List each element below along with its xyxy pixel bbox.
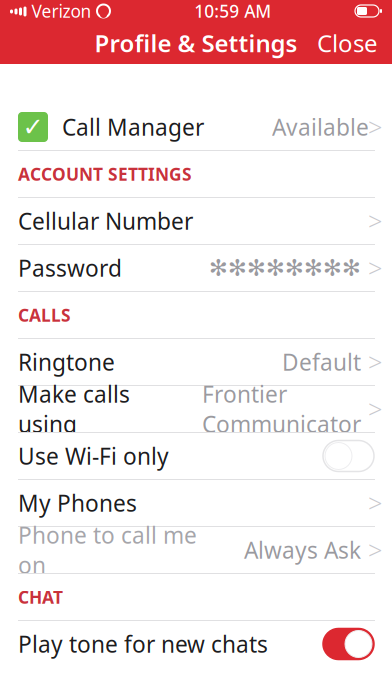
staticText: Close [317,27,378,59]
button[interactable]: Make calls using [0,386,392,432]
staticText: ACCOUNT SETTINGS [18,162,192,185]
staticText: Phone to call me on [18,520,197,580]
staticText: Frontier Communicator [202,379,361,439]
staticText: Ringtone [18,347,115,377]
staticText: > [368,110,382,144]
button[interactable]: My Phones [0,480,392,526]
staticText: > [368,345,382,379]
staticText: Call Manager [62,112,204,142]
staticText: > [368,533,382,567]
button[interactable]: Close [303,17,392,69]
staticText: Cellular Number [18,206,193,236]
staticText: > [368,486,382,520]
button[interactable]: Use Wi-Fi only [323,440,374,471]
staticText: Profile & Settings [94,27,297,59]
staticText: Verizon [31,0,91,22]
button[interactable]: Password [0,245,392,291]
staticText: Default [282,347,361,377]
staticText: Available [272,112,369,142]
button[interactable]: Play tone for new chats [323,628,374,659]
staticText: > [368,251,382,285]
staticText: > [368,392,382,426]
staticText: CALLS [18,303,71,326]
button[interactable]: Cellular Number [0,198,392,244]
staticText: Password [18,253,122,283]
staticText: Always Ask [244,535,361,565]
staticText: My Phones [18,488,137,518]
button[interactable]: ✓ [0,104,392,150]
button[interactable]: Ringtone [0,339,392,385]
staticText: Use Wi-Fi only [18,441,169,471]
staticText: Play tone for new chats [18,629,268,659]
staticText: ✓ [22,113,43,141]
button[interactable]: Phone to call me on [0,527,392,573]
staticText: Make calls using [18,379,130,439]
staticText: > [368,204,382,238]
staticText: ✻✻✻✻✻✻✻✻ [209,255,361,281]
staticText: 10:59 AM [194,0,271,22]
staticText: CHAT [18,585,63,608]
